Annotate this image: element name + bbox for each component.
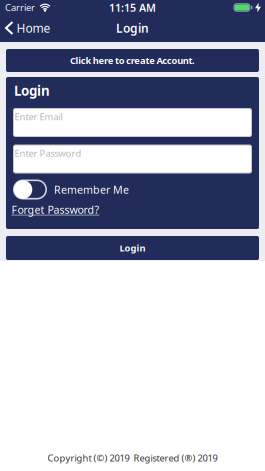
button[interactable]: Remember Me: [13, 179, 47, 199]
staticText: 11:15 AM: [109, 0, 156, 15]
staticText: Login: [116, 20, 149, 36]
staticText: Home: [16, 20, 50, 36]
button[interactable]: Click here to create Account.: [6, 49, 259, 72]
button[interactable]: Forget Password?: [11, 202, 99, 217]
staticText: Remember Me: [54, 182, 129, 197]
staticText: Click here to create Account.: [70, 54, 195, 67]
staticText: Login: [14, 82, 50, 99]
staticText: Login: [119, 242, 145, 254]
staticText: Enter Password: [14, 147, 81, 159]
staticText: Carrier: [5, 1, 35, 14]
staticText: Forget Password?: [11, 202, 99, 217]
button[interactable]: Enter Password: [13, 144, 252, 173]
staticText: Copyright (©) 2019 Registered (®) 2019: [47, 452, 217, 464]
button[interactable]: Back: [0, 20, 50, 36]
button[interactable]: Enter Email: [13, 108, 252, 137]
staticText: Enter Email: [14, 110, 62, 123]
button[interactable]: Login: [6, 236, 259, 260]
